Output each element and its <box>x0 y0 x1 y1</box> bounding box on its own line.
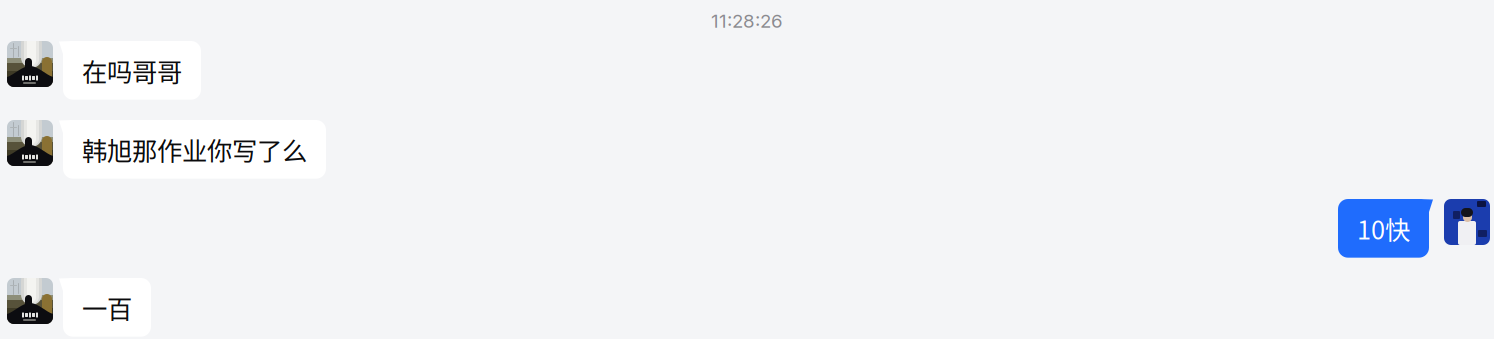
staticText: 10快 <box>1357 210 1410 247</box>
button[interactable]: Profile photo, 韩旭 <box>7 278 53 324</box>
staticText: 11:28:26 <box>711 10 783 32</box>
button[interactable]: 韩旭那作业你写了么 <box>59 120 326 179</box>
staticText: 韩旭那作业你写了么 <box>82 131 307 168</box>
staticText: 在吗哥哥 <box>82 52 182 89</box>
button[interactable]: Profile photo, 韩旭 <box>7 120 53 166</box>
button[interactable]: 在吗哥哥 <box>59 41 201 100</box>
staticText: 一百 <box>82 289 132 326</box>
button[interactable]: 一百 <box>59 278 151 337</box>
button[interactable]: 10快 <box>1338 199 1433 258</box>
button[interactable]: Your profile photo <box>1444 199 1490 245</box>
button[interactable]: Profile photo, 韩旭 <box>7 41 53 87</box>
